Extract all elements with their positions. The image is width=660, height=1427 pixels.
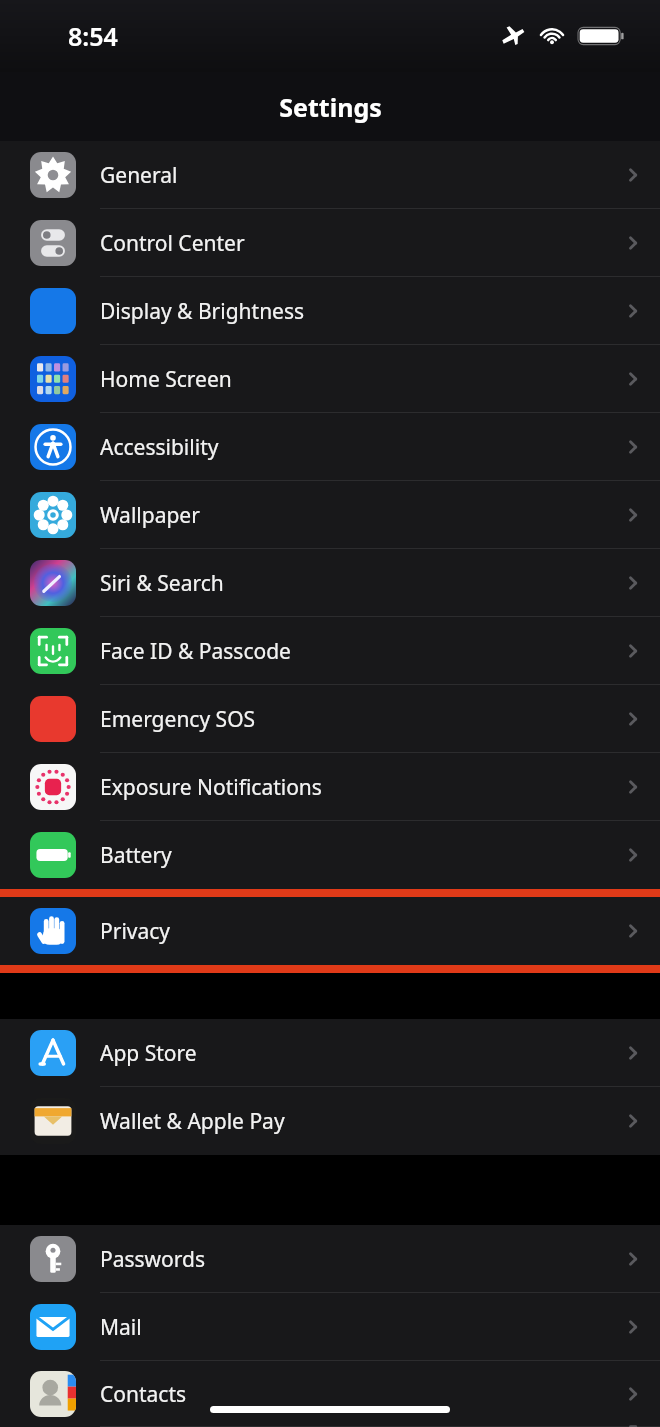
button[interactable]: Siri & Search — [0, 549, 660, 617]
staticText: Display & Brightness — [100, 297, 626, 326]
staticText: General — [100, 161, 626, 190]
staticText: Contacts — [100, 1380, 626, 1409]
staticText: Accessibility — [100, 433, 626, 462]
staticText: Wallet & Apple Pay — [100, 1107, 626, 1136]
button[interactable]: Emergency SOS — [0, 685, 660, 753]
button[interactable]: Control Center — [0, 209, 660, 277]
button[interactable]: Wallet & Apple Pay — [0, 1087, 660, 1155]
button[interactable]: App Store — [0, 1019, 660, 1087]
button[interactable]: Display & Brightness — [0, 277, 660, 345]
staticText: Settings — [279, 90, 382, 124]
staticText: Privacy — [100, 917, 626, 946]
staticText: Exposure Notifications — [100, 773, 626, 802]
button[interactable]: Wallpaper — [0, 481, 660, 549]
staticText: Passwords — [100, 1245, 626, 1274]
staticText: Siri & Search — [100, 569, 626, 598]
button[interactable]: Mail — [0, 1293, 660, 1361]
button[interactable]: General — [0, 141, 660, 209]
button[interactable]: Contacts — [0, 1361, 660, 1427]
staticText: App Store — [100, 1039, 626, 1068]
button[interactable]: Home Screen — [0, 345, 660, 413]
button[interactable]: Passwords — [0, 1225, 660, 1293]
staticText: Mail — [100, 1313, 626, 1342]
staticText: Wallpaper — [100, 501, 626, 530]
staticText: Control Center — [100, 229, 626, 258]
button[interactable]: Privacy — [0, 897, 660, 965]
staticText: 8:54 — [68, 19, 118, 53]
button[interactable]: Battery — [0, 821, 660, 889]
button[interactable]: Face ID & Passcode — [0, 617, 660, 685]
staticText: Home Screen — [100, 365, 626, 394]
staticText: Face ID & Passcode — [100, 637, 626, 666]
button[interactable]: Accessibility — [0, 413, 660, 481]
staticText: Emergency SOS — [100, 705, 626, 734]
staticText: Battery — [100, 841, 626, 870]
button[interactable]: Exposure Notifications — [0, 753, 660, 821]
